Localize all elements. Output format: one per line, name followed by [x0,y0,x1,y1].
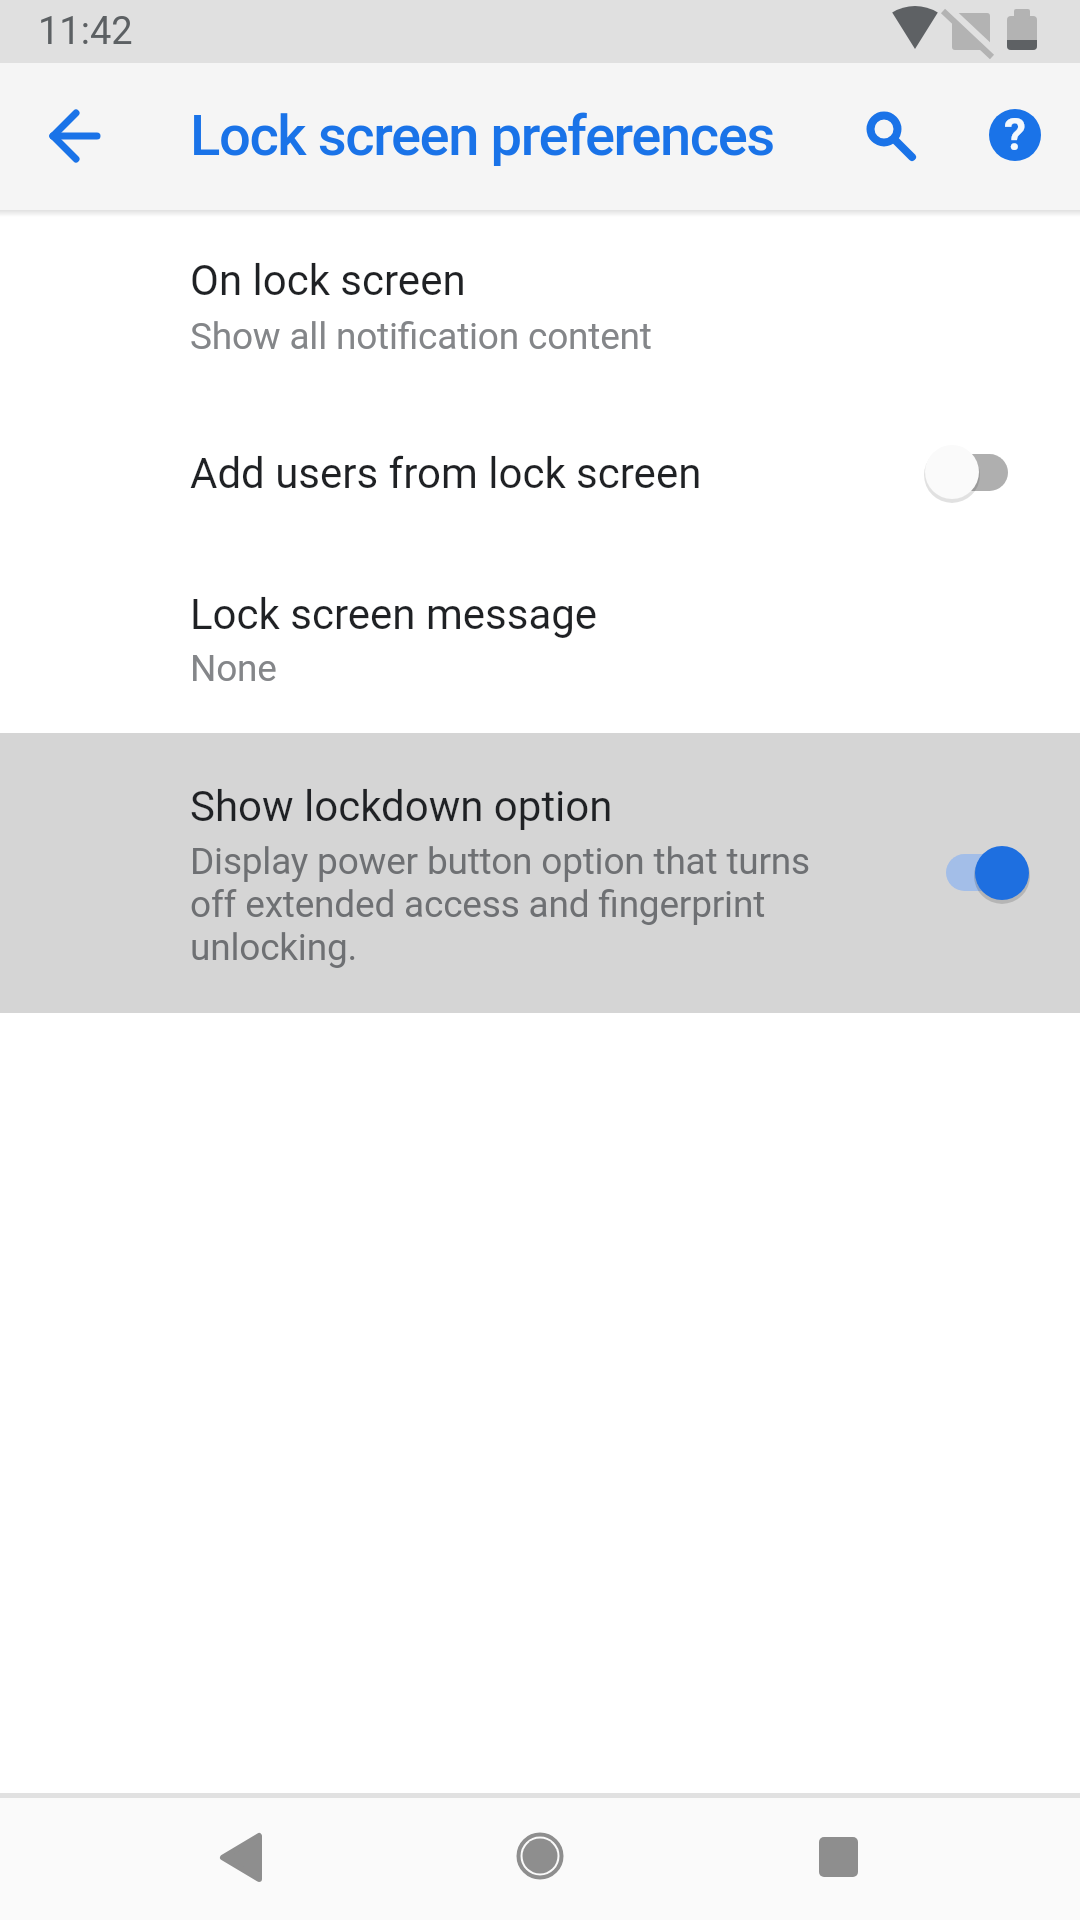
button[interactable]: Show lockdown option [0,733,1080,1013]
staticText: Add users from lock screen [190,449,702,498]
button[interactable]: On lock screen [0,211,1080,405]
staticText: Display power button option that turns o… [190,840,810,969]
staticText: On lock screen [190,256,466,305]
staticText: None [190,647,277,690]
button[interactable]: Add users from lock screen [0,405,1080,544]
button[interactable] [177,1794,305,1920]
button[interactable]: Lock screen message [0,544,1080,733]
button[interactable] [836,82,932,178]
staticText: Show all notification content [190,315,652,358]
button[interactable] [476,1794,604,1920]
button[interactable] [27,89,123,185]
staticText: ? [1004,109,1026,161]
staticText: Lock screen message [190,590,598,639]
staticText: Show lockdown option [190,782,613,831]
staticText: Lock screen preferences [190,103,774,169]
button[interactable] [774,1794,902,1920]
button[interactable]: ? [969,87,1065,183]
staticText: 11:42 [38,9,133,54]
